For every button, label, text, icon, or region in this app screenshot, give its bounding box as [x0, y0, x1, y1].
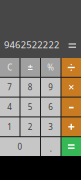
- button[interactable]: %: [41, 58, 60, 77]
- button[interactable]: .: [41, 137, 60, 156]
- button[interactable]: 9: [41, 78, 60, 97]
- staticText: 3: [48, 121, 53, 132]
- button[interactable]: 7: [0, 78, 19, 97]
- button[interactable]: 4: [0, 98, 19, 116]
- button[interactable]: equals: [61, 137, 81, 156]
- button[interactable]: 3: [41, 117, 60, 136]
- staticText: 6: [48, 102, 53, 112]
- staticText: 5: [28, 102, 33, 112]
- button[interactable]: 0: [0, 137, 40, 156]
- button[interactable]: 6: [41, 98, 60, 116]
- button[interactable]: plus: [61, 117, 81, 136]
- button[interactable]: 5: [20, 98, 40, 116]
- button[interactable]: 8: [20, 78, 40, 97]
- staticText: C: [7, 62, 12, 73]
- staticText: 4: [7, 102, 12, 112]
- staticText: 0: [17, 141, 22, 152]
- button[interactable]: C: [0, 58, 19, 77]
- button[interactable]: 1: [0, 117, 19, 136]
- staticText: 9: [48, 82, 53, 93]
- button[interactable]: divide: [61, 58, 81, 77]
- button[interactable]: minus: [61, 98, 81, 116]
- staticText: 7: [7, 82, 12, 93]
- staticText: 2: [28, 121, 33, 132]
- button[interactable]: multiply: [61, 78, 81, 97]
- staticText: 1: [7, 121, 12, 132]
- staticText: 9462522222: [4, 38, 59, 51]
- button[interactable]: plus minus: [20, 58, 40, 77]
- staticText: .: [50, 143, 52, 154]
- button[interactable]: 2: [20, 117, 40, 136]
- staticText: 8: [28, 82, 33, 93]
- staticText: %: [47, 62, 54, 73]
